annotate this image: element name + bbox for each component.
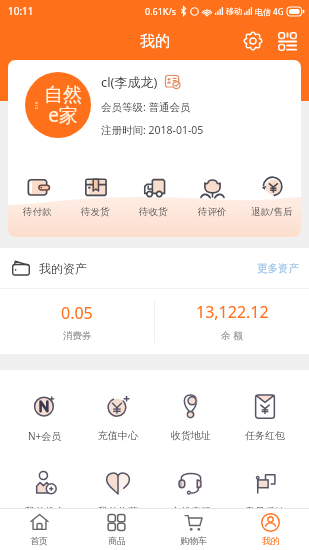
button[interactable]: 意见反馈	[228, 469, 302, 518]
staticText: 余 额	[221, 329, 243, 342]
button[interactable]: 我的	[232, 509, 309, 550]
staticText: 购物车	[180, 535, 207, 546]
staticText: 我的	[262, 535, 280, 546]
button[interactable]: Switch layout	[274, 28, 300, 54]
staticText: 收货地址	[171, 429, 211, 442]
staticText: 待发货	[81, 206, 110, 218]
button[interactable]: 我的推广	[8, 469, 81, 518]
staticText: 注册时间: 2018-01-05	[101, 123, 204, 137]
staticText: ZIRANYIJIA	[33, 101, 38, 109]
staticText: 待付款	[23, 206, 52, 218]
staticText: 电信 4G	[255, 6, 284, 17]
button[interactable]: 商品	[78, 509, 155, 550]
button[interactable]: 更多资产	[257, 262, 299, 275]
staticText: 首页	[30, 535, 48, 546]
button[interactable]: 首页	[0, 509, 78, 550]
button[interactable]: 待评价	[183, 173, 242, 222]
staticText: 待评价	[198, 206, 227, 218]
button[interactable]: 任务红包	[228, 393, 302, 442]
button[interactable]: 购物车	[155, 509, 232, 550]
staticText: 13,122.12	[196, 301, 269, 323]
staticText: 我的推广	[25, 505, 65, 518]
button[interactable]: 退款/售后	[242, 172, 301, 222]
staticText: 移动	[226, 6, 242, 16]
staticText: 意见反馈	[245, 505, 285, 518]
staticText: 我的资产	[39, 261, 87, 276]
staticText: 10:11	[8, 4, 34, 18]
button[interactable]: 待收货	[124, 173, 183, 222]
staticText: 自然 e家	[44, 83, 82, 127]
staticText: 商品	[108, 535, 126, 546]
staticText: cl(李成龙)	[101, 73, 158, 91]
button[interactable]: 充值中心	[81, 393, 154, 442]
button[interactable]: 在线客服	[154, 469, 228, 518]
staticText: 消费券	[63, 330, 92, 342]
staticText: 0.61K/s	[145, 5, 177, 17]
button[interactable]: 待发货	[66, 173, 124, 222]
button[interactable]: 13,122.12	[155, 289, 309, 354]
staticText: 我的	[140, 32, 170, 51]
staticText: 0.05	[61, 302, 93, 324]
staticText: 任务红包	[245, 429, 285, 442]
button[interactable]: 我的收藏	[81, 469, 154, 518]
staticText: 充值中心	[98, 429, 138, 442]
button[interactable]: 待付款	[8, 173, 66, 222]
staticText: 退款/售后	[251, 205, 293, 218]
button[interactable]: 0.05	[0, 289, 154, 354]
button[interactable]: N+会员	[8, 393, 81, 443]
staticText: 会员等级: 普通会员	[101, 100, 191, 114]
button[interactable]: ZIRANYIJIA	[25, 72, 91, 138]
staticText: 我的收藏	[98, 505, 138, 518]
staticText: 在线客服	[171, 505, 211, 518]
button[interactable]: 收货地址	[154, 393, 228, 442]
staticText: N+会员	[28, 429, 62, 443]
button[interactable]: Settings	[240, 28, 266, 54]
staticText: 待收货	[139, 206, 168, 218]
